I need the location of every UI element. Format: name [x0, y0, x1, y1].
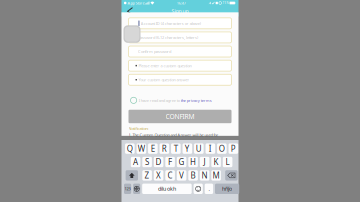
- staticText: Sign up: [171, 8, 188, 15]
- staticText: 16:47: [177, 0, 186, 6]
- button[interactable]: A: [131, 157, 140, 167]
- button[interactable]: 123: [124, 184, 131, 194]
- staticText: H: [190, 157, 196, 167]
- staticText: Account ID (4 characters or above): [141, 21, 201, 26]
- staticText: I have read and agree to: [137, 98, 181, 103]
- staticText: Z: [145, 170, 150, 181]
- button[interactable]: O: [217, 143, 227, 154]
- staticText: O: [219, 143, 225, 154]
- button[interactable]: R: [160, 143, 169, 154]
- staticText: P: [231, 143, 236, 154]
- staticText: F: [168, 157, 172, 167]
- staticText: 75%: [223, 1, 229, 5]
- button[interactable]: T: [171, 143, 181, 154]
- button[interactable]: F: [165, 157, 175, 167]
- button[interactable]: H: [188, 157, 198, 167]
- button[interactable]: dilu okh: [142, 184, 192, 194]
- staticText: 123: [125, 186, 131, 191]
- button[interactable]: Emoji: [194, 184, 203, 194]
- staticText: E: [151, 143, 155, 154]
- button[interactable]: J: [200, 157, 209, 167]
- staticText: [144, 0, 145, 6]
- staticText: L: [226, 157, 230, 167]
- button[interactable]: K: [211, 157, 221, 167]
- button[interactable]: Account ID (4 characters or above): [128, 18, 231, 29]
- button[interactable]: Password (6-12 characters, letters): [128, 32, 231, 43]
- button[interactable]: G: [177, 157, 186, 167]
- staticText: Notification:: [128, 126, 148, 131]
- button[interactable]: CONFIRM: [128, 110, 231, 123]
- staticText: App Store: [126, 0, 144, 6]
- button[interactable]: Y: [183, 143, 192, 154]
- staticText: password retrieval.: [128, 139, 162, 144]
- button[interactable]: Q: [125, 143, 135, 154]
- button[interactable]: V: [177, 170, 186, 181]
- staticText: .: [208, 185, 209, 192]
- staticText: G: [179, 157, 185, 167]
- staticText: W: [138, 143, 145, 154]
- button[interactable]: C: [165, 170, 175, 181]
- staticText: Password (6-12 characters, letters): [138, 35, 198, 40]
- staticText: X: [156, 170, 161, 181]
- button[interactable]: Shift: [126, 170, 138, 181]
- button[interactable]: N: [200, 170, 209, 181]
- staticText: Please enter a custom question: [138, 63, 191, 68]
- button[interactable]: Agree to terms: [130, 97, 137, 103]
- button[interactable]: the privacy terms: [181, 98, 212, 103]
- button[interactable]: Please enter a custom question: [128, 60, 231, 71]
- staticText: hñǰo: [222, 185, 232, 192]
- staticText: dilu okh: [158, 185, 176, 192]
- staticText: D: [156, 157, 162, 167]
- button[interactable]: Confirm password: [128, 46, 231, 57]
- staticText: the privacy terms: [181, 98, 212, 103]
- button[interactable]: B: [188, 170, 198, 181]
- staticText: [149, 0, 150, 6]
- staticText: CONFIRM: [165, 112, 194, 121]
- button[interactable]: Next keyboard: [133, 184, 140, 194]
- button[interactable]: W: [137, 143, 146, 154]
- staticText: B: [191, 170, 196, 181]
- staticText: T: [174, 143, 178, 154]
- button[interactable]: U: [194, 143, 204, 154]
- staticText: V: [179, 170, 184, 181]
- staticText: I: [209, 143, 212, 154]
- staticText: K: [214, 157, 219, 167]
- staticText: A: [133, 157, 138, 167]
- staticText: Your custom question answer: [138, 77, 189, 82]
- staticText: N: [202, 170, 208, 181]
- staticText: R: [162, 143, 167, 154]
- button[interactable]: Your custom question answer: [128, 74, 231, 85]
- button[interactable]: Z: [142, 170, 152, 181]
- button[interactable]: P: [229, 143, 238, 154]
- button[interactable]: S: [142, 157, 152, 167]
- button[interactable]: E: [148, 143, 158, 154]
- staticText: M: [213, 170, 220, 181]
- staticText: Q: [127, 143, 133, 154]
- staticText: U: [196, 143, 202, 154]
- staticText: J: [204, 157, 206, 167]
- button[interactable]: I: [206, 143, 215, 154]
- button[interactable]: hñǰo: [215, 184, 239, 194]
- button[interactable]: Back: [123, 6, 136, 16]
- staticText: Confirm password: [138, 49, 171, 54]
- button[interactable]: M: [211, 170, 221, 181]
- button[interactable]: L: [223, 157, 232, 167]
- button[interactable]: X: [154, 170, 163, 181]
- button[interactable]: .: [205, 184, 213, 194]
- button[interactable]: D: [154, 157, 163, 167]
- staticText: 1. The Custom Question and Answer will b…: [128, 132, 218, 138]
- staticText: Y: [185, 143, 190, 154]
- staticText: S: [145, 157, 149, 167]
- button[interactable]: Profile photo: [123, 25, 140, 43]
- staticText: C: [168, 170, 173, 181]
- button[interactable]: Delete: [225, 170, 238, 181]
